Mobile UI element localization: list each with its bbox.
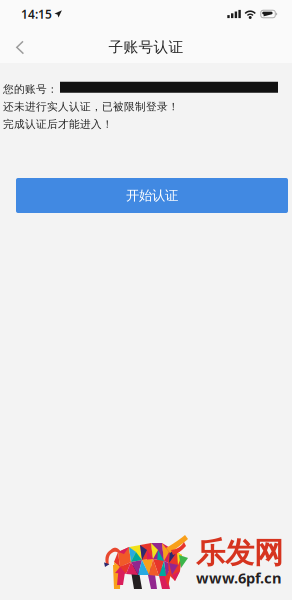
button[interactable]: 开始认证	[16, 178, 288, 213]
staticText: 完成认证后才能进入！	[3, 118, 113, 131]
staticText: 还未进行实人认证，已被限制登录！	[3, 100, 179, 113]
staticText: 您的账号：	[3, 83, 58, 96]
staticText: www.6pf.cn	[196, 568, 282, 587]
staticText: 14:15	[21, 6, 52, 22]
staticText: 乐发网	[196, 535, 283, 571]
button[interactable]: Back	[0, 28, 38, 63]
staticText: 开始认证	[126, 187, 178, 204]
staticText: 子账号认证	[108, 38, 183, 56]
